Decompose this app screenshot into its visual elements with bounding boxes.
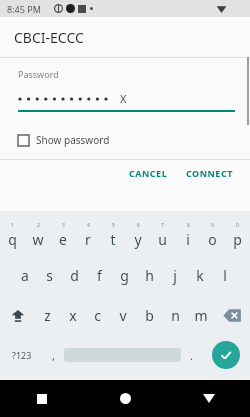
staticText: p bbox=[233, 230, 242, 249]
button[interactable]: f bbox=[87, 255, 112, 295]
staticText: w bbox=[32, 230, 44, 249]
button[interactable]: g bbox=[112, 255, 137, 295]
staticText: X bbox=[120, 91, 127, 106]
button[interactable]: a bbox=[12, 255, 37, 295]
button[interactable]: Home bbox=[84, 380, 167, 417]
staticText: 0 bbox=[236, 222, 239, 229]
button[interactable]: CONNECT bbox=[180, 163, 239, 183]
button[interactable]: j bbox=[162, 255, 187, 295]
staticText: u bbox=[158, 230, 167, 249]
button[interactable]: k bbox=[187, 255, 212, 295]
button[interactable]: X bbox=[0, 89, 250, 107]
staticText: Show password bbox=[36, 133, 110, 147]
button[interactable]: n bbox=[162, 295, 188, 335]
button[interactable]: 3 bbox=[50, 215, 75, 255]
button[interactable]: s bbox=[37, 255, 62, 295]
button[interactable]: 2 bbox=[25, 215, 50, 255]
staticText: CONNECT bbox=[186, 167, 233, 179]
button[interactable]: 9 bbox=[200, 215, 225, 255]
button[interactable]: c bbox=[85, 295, 110, 335]
staticText: . bbox=[190, 348, 193, 363]
button[interactable]: Enter bbox=[212, 341, 240, 369]
button[interactable]: , bbox=[43, 335, 64, 375]
button[interactable]: 1 bbox=[0, 215, 25, 255]
staticText: CBCI-ECCC bbox=[14, 28, 84, 47]
staticText: j bbox=[173, 266, 177, 285]
staticText: 8:45 PM bbox=[7, 3, 41, 15]
button[interactable]: ?123 bbox=[0, 335, 43, 375]
staticText: c bbox=[94, 306, 101, 325]
button[interactable]: b bbox=[136, 295, 162, 335]
staticText: v bbox=[119, 306, 127, 325]
staticText: f bbox=[97, 266, 102, 285]
staticText: 6 bbox=[137, 222, 140, 229]
staticText: d bbox=[70, 266, 79, 285]
button[interactable]: Recent apps bbox=[0, 380, 84, 417]
button[interactable]: 5 bbox=[100, 215, 125, 255]
staticText: n bbox=[171, 306, 180, 325]
staticText: 9 bbox=[211, 222, 214, 229]
button[interactable]: Backspace bbox=[214, 295, 250, 335]
staticText: m bbox=[194, 306, 208, 325]
staticText: r bbox=[85, 230, 91, 249]
button[interactable]: 6 bbox=[125, 215, 150, 255]
staticText: t bbox=[110, 230, 116, 249]
staticText: CANCEL bbox=[129, 167, 168, 179]
button[interactable]: 0 bbox=[225, 215, 250, 255]
staticText: , bbox=[52, 348, 55, 363]
button[interactable]: 4 bbox=[75, 215, 100, 255]
staticText: h bbox=[145, 266, 154, 285]
staticText: 3 bbox=[62, 222, 65, 229]
staticText: q bbox=[8, 230, 17, 249]
button[interactable]: CANCEL bbox=[123, 163, 174, 183]
staticText: x bbox=[69, 306, 77, 325]
button[interactable]: x bbox=[60, 295, 85, 335]
button[interactable]: . bbox=[181, 335, 202, 375]
staticText: 1 bbox=[11, 222, 14, 229]
staticText: Password bbox=[18, 68, 59, 80]
button[interactable]: Show password bbox=[0, 130, 250, 150]
button[interactable]: 7 bbox=[150, 215, 175, 255]
staticText: 4 bbox=[87, 222, 90, 229]
staticText: s bbox=[46, 266, 53, 285]
staticText: ?123 bbox=[12, 349, 32, 361]
staticText: 5 bbox=[112, 222, 115, 229]
staticText: l bbox=[223, 266, 227, 285]
staticText: 2 bbox=[37, 222, 40, 229]
button[interactable]: z bbox=[35, 295, 60, 335]
staticText: b bbox=[145, 306, 154, 325]
staticText: a bbox=[21, 266, 29, 285]
staticText: k bbox=[196, 266, 204, 285]
staticText: i bbox=[186, 230, 190, 249]
button[interactable]: v bbox=[110, 295, 136, 335]
staticText: z bbox=[44, 306, 51, 325]
button[interactable]: Shift bbox=[0, 295, 35, 335]
button[interactable]: Back bbox=[167, 380, 250, 417]
button[interactable]: h bbox=[137, 255, 162, 295]
button[interactable]: 8 bbox=[175, 215, 200, 255]
button[interactable]: d bbox=[62, 255, 87, 295]
staticText: y bbox=[134, 230, 142, 249]
staticText: 7 bbox=[161, 222, 164, 229]
staticText: 8 bbox=[187, 222, 190, 229]
button[interactable]: l bbox=[212, 255, 237, 295]
staticText: e bbox=[59, 230, 67, 249]
staticText: g bbox=[120, 266, 129, 285]
staticText: o bbox=[208, 230, 217, 249]
button[interactable]: m bbox=[188, 295, 214, 335]
